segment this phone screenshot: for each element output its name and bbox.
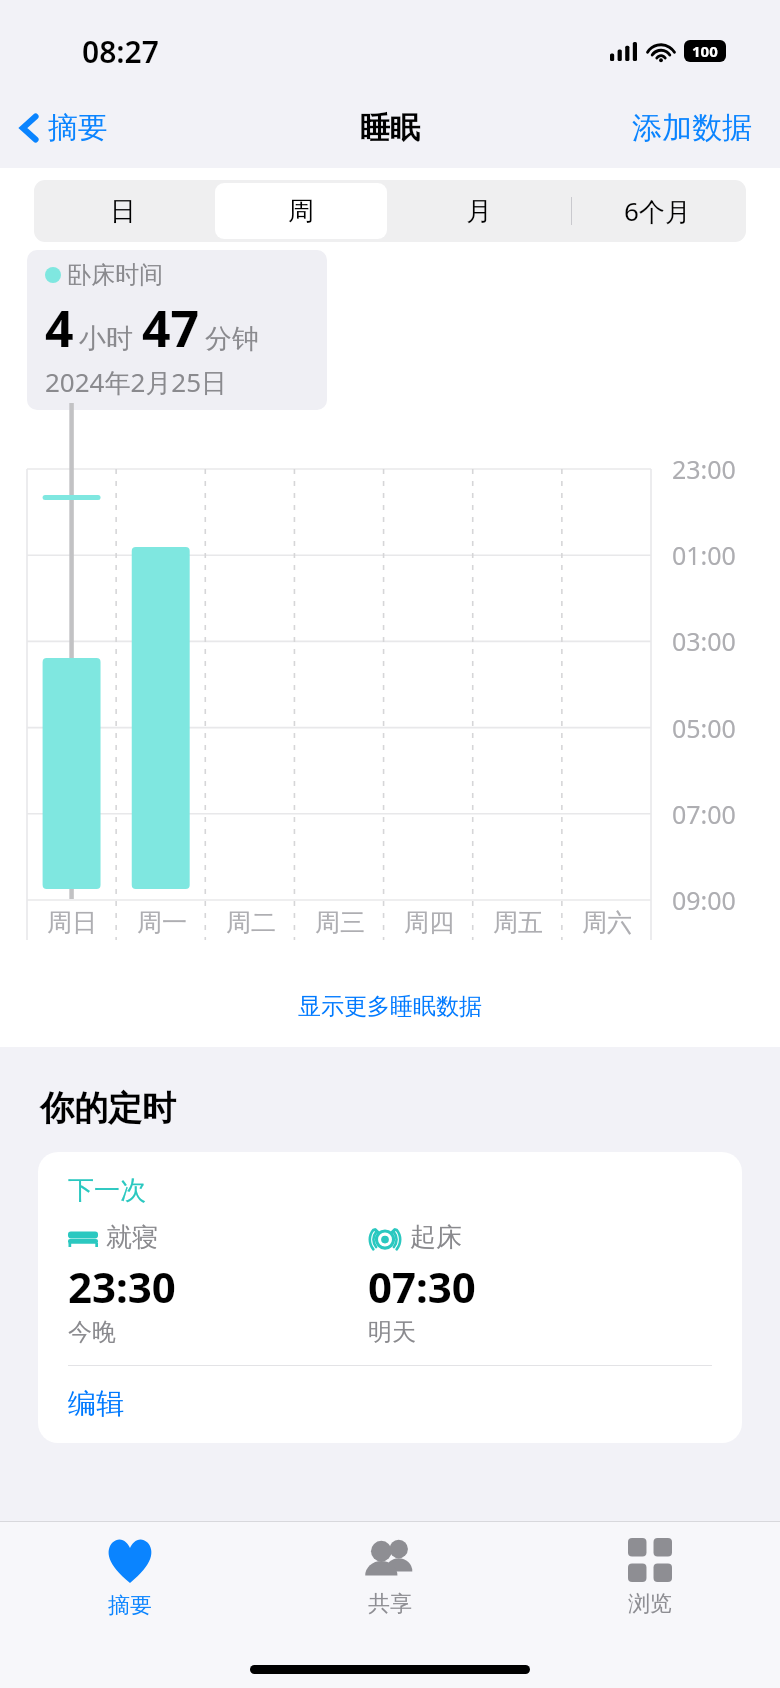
staticText: 摘要 [108,1592,152,1620]
button[interactable]: 共享 [260,1522,520,1650]
other: 共享 [359,1538,421,1582]
staticText: 浏览 [628,1590,672,1618]
staticText: 就寝 [106,1221,158,1254]
staticText: 23:30 [68,1258,176,1315]
staticText: 周 [288,195,314,228]
staticText: 01:00 [672,538,736,572]
staticText: 摘要 [48,109,108,147]
staticText: 6个月 [624,193,691,229]
staticText: 今晚 [68,1317,116,1347]
staticText: 周五 [493,907,543,938]
staticText: 共享 [368,1590,412,1618]
other: 浏览 [628,1538,672,1582]
staticText: 卧床时间 [67,260,163,290]
staticText: 09:00 [672,883,736,917]
staticText: 月 [466,195,492,228]
button[interactable]: 周 [215,183,387,239]
staticText: 你的定时 [40,1087,176,1130]
staticText: 周一 [137,907,187,938]
staticText: 睡眠 [360,109,420,147]
staticText: 周二 [226,907,276,938]
staticText: 添加数据 [632,109,752,147]
staticText: 周六 [582,907,632,938]
staticText: 显示更多睡眠数据 [298,992,482,1021]
staticText: 周三 [315,907,365,938]
staticText: 2024年2月25日 [45,364,228,400]
staticText: 100 [692,41,718,61]
button[interactable]: 6个月 [571,183,743,239]
staticText: 编辑 [68,1386,124,1421]
staticText: 4 [45,294,74,362]
staticText: 03:00 [672,624,736,658]
staticText: 分钟 [205,322,259,356]
button[interactable]: 月 [393,183,565,239]
staticText: 07:00 [672,797,736,831]
staticText: 47 [142,294,200,362]
staticText: 日 [110,195,136,228]
staticText: 下一次 [68,1174,146,1207]
staticText: 明天 [368,1317,416,1347]
staticText: 23:00 [672,452,736,486]
staticText: 起床 [410,1221,462,1254]
staticText: 小时 [79,322,133,356]
staticText: 08:27 [82,31,159,72]
other: 摘要 [105,1538,155,1584]
button[interactable]: 摘要 [0,1522,260,1650]
staticText: 07:30 [368,1258,476,1315]
button[interactable]: 显示更多睡眠数据 [0,986,780,1027]
button[interactable]: 日 [37,183,209,239]
staticText: 周四 [404,907,454,938]
button[interactable]: 浏览 [520,1522,780,1650]
staticText: 05:00 [672,711,736,745]
button[interactable]: 编辑 [68,1366,742,1443]
button[interactable]: 添加数据 [632,109,780,147]
button[interactable]: 摘要 [18,109,108,147]
staticText: 周日 [47,907,97,938]
